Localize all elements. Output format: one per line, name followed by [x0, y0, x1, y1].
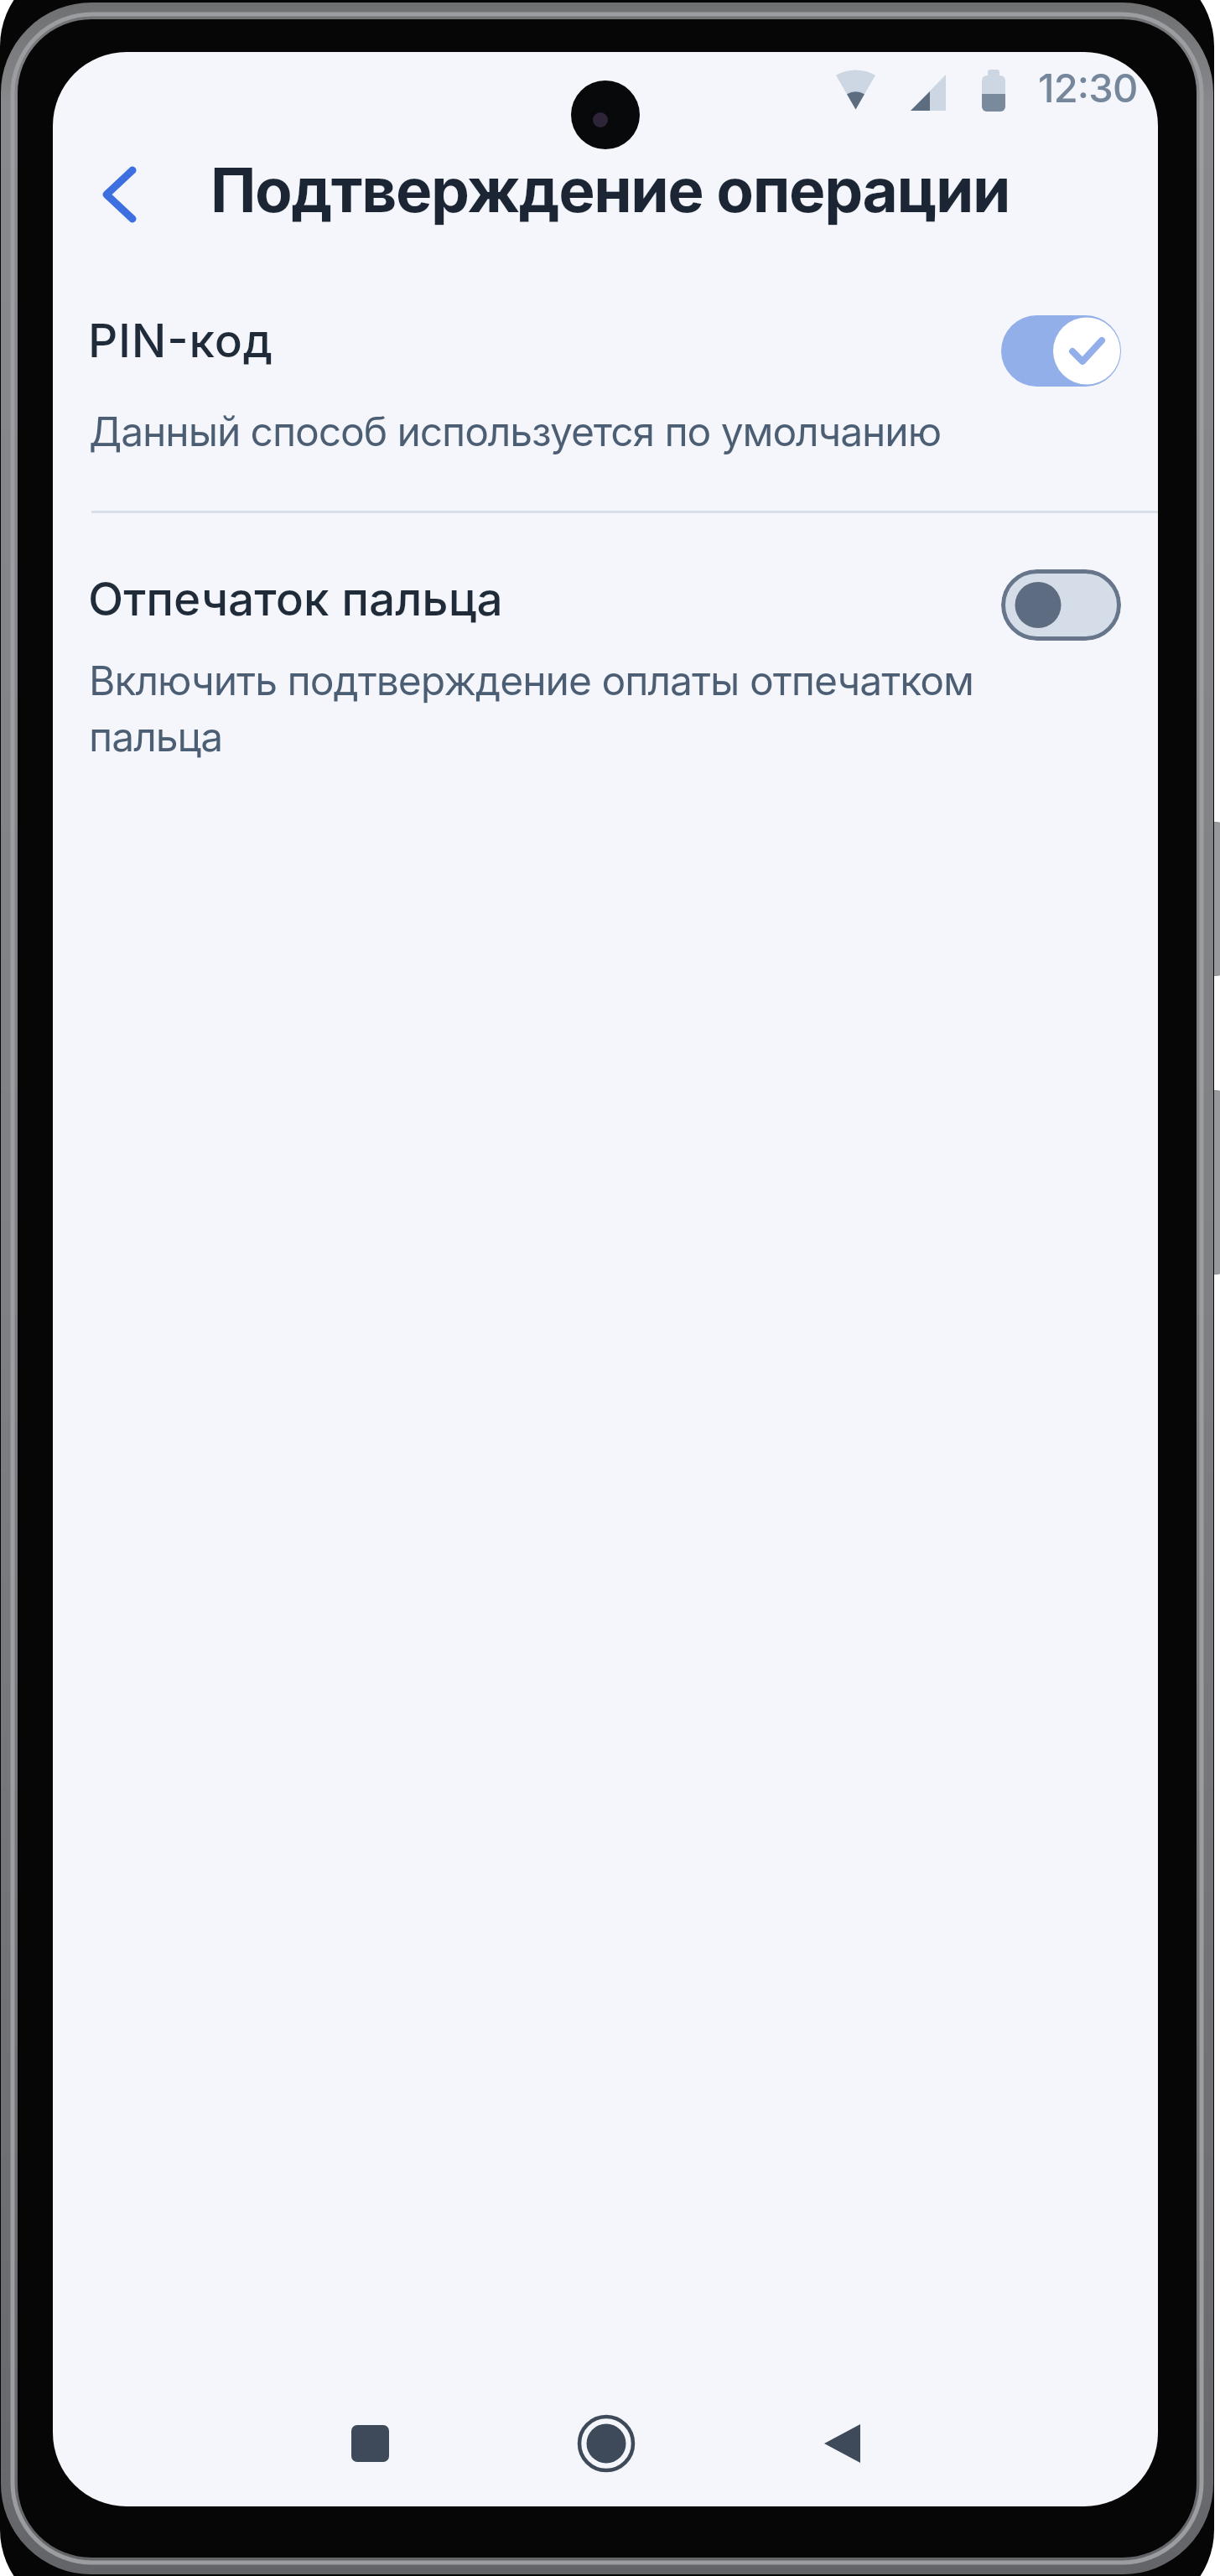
staticText: 12:30: [1038, 64, 1138, 112]
button[interactable]: [340, 2413, 400, 2474]
button[interactable]: [812, 2413, 873, 2474]
button[interactable]: [1001, 315, 1121, 387]
button[interactable]: [53, 545, 1158, 788]
button[interactable]: [1001, 569, 1121, 641]
staticText: Включить подтверждение оплаты отпечатком…: [89, 656, 973, 761]
button[interactable]: [53, 293, 1158, 478]
staticText: PIN-код: [88, 313, 273, 369]
button[interactable]: [84, 164, 151, 231]
button[interactable]: [576, 2413, 636, 2474]
staticText: Данный способ используется по умолчанию: [89, 407, 942, 455]
staticText: Подтверждение операции: [0, 153, 1220, 226]
staticText: Отпечаток пальца: [88, 571, 503, 627]
